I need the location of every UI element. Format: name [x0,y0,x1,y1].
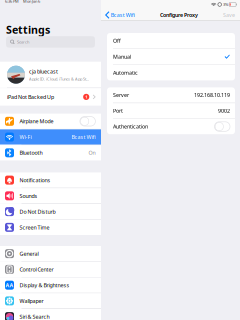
button[interactable]: Server [107,87,235,103]
staticText: Search [17,39,29,45]
staticText: Manual [113,53,131,60]
button[interactable]: Manual [107,49,235,64]
staticText: Authentication [113,123,148,130]
button[interactable]: iPad Not Backed Up [0,88,101,106]
staticText: 9002 [218,107,230,114]
button[interactable]: General [0,246,101,261]
staticText: Do Not Disturb [19,208,55,215]
staticText: Save [223,11,235,19]
staticText: 192.168.10.119 [194,91,230,99]
button[interactable]: Siri & Search [0,309,101,320]
button[interactable]: Wi-Fi [0,129,101,145]
staticText: Bluetooth [19,149,42,156]
staticText: Wallpaper [19,297,43,304]
button[interactable]: Do Not Disturb [0,204,101,219]
button[interactable]: Bcast Wifi [101,9,135,21]
staticText: Control Center [19,266,53,273]
button[interactable]: Save [223,9,240,21]
button[interactable]: Airplane Mode [0,114,101,129]
staticText: Port [113,107,123,114]
staticText: iPad Not Backed Up [7,93,54,100]
button[interactable]: Bluetooth [0,145,101,160]
staticText: Wi-Fi [19,133,31,141]
staticText: Off [113,37,121,44]
button[interactable]: AA [0,277,101,293]
button[interactable]: Wallpaper [0,293,101,308]
staticText: Automatic [113,69,138,76]
staticText: 3% [223,2,228,7]
staticText: Bcast Wifi [111,11,135,19]
staticText: Display & Brightness [19,282,69,289]
staticText: 1 [85,94,87,99]
staticText: cja bluecast [29,68,58,75]
button[interactable]: Off [107,33,235,48]
staticText: General [19,250,38,257]
button[interactable]: Sounds [0,188,101,203]
staticText: 6:36 PM [5,0,19,4]
button[interactable]: Turn on [80,116,95,126]
button[interactable]: Port [107,103,235,118]
staticText: Configure Proxy [160,11,198,19]
staticText: AA [5,282,13,289]
button[interactable]: Turn on [214,122,230,131]
staticText: Server [113,91,129,99]
button[interactable]: Automatic [107,65,235,80]
staticText: Airplane Mode [19,118,53,125]
staticText: Notifications [19,177,50,184]
staticText: On [88,149,95,156]
button[interactable]: Control Center [0,262,101,277]
button[interactable]: Search [6,36,95,48]
staticText: Screen Time [19,224,49,231]
button[interactable]: cja bluecast [0,62,101,88]
staticText: Siri & Search [19,313,49,320]
button[interactable]: Screen Time [0,220,101,235]
staticText: Mon Jan 6 [23,0,40,4]
staticText: Sounds [19,192,37,199]
staticText: Bcast Wifi [71,133,95,141]
button[interactable]: Notifications [0,172,101,188]
staticText: Settings [6,22,50,37]
staticText: Apple ID, iCloud, iTunes & App St... [29,76,89,81]
